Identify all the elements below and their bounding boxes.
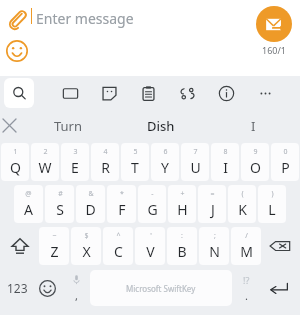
button[interactable]: Emoji keyboard (32, 267, 62, 309)
button[interactable]: @ (14, 185, 43, 223)
button[interactable]: Close suggestions (3, 119, 16, 132)
button[interactable]: $ (71, 227, 101, 265)
button[interactable]: Turn (22, 110, 114, 141)
staticText: U (190, 158, 201, 177)
button[interactable]: 5 (121, 143, 149, 181)
button[interactable]: : (167, 227, 197, 265)
button[interactable]: 2 (31, 143, 59, 181)
staticText: I (223, 158, 228, 177)
staticText: + (180, 189, 185, 199)
staticText: C (114, 242, 123, 261)
staticText: T (131, 158, 139, 177)
staticText: 4 (103, 147, 108, 157)
staticText: A (24, 200, 33, 219)
staticText: B (177, 242, 187, 261)
staticText: ' (150, 231, 152, 241)
staticText: = (210, 189, 215, 199)
staticText: N (209, 242, 220, 261)
staticText: 6 (163, 147, 168, 157)
staticText: D (85, 200, 96, 219)
staticText: ~ (52, 231, 57, 241)
staticText: 0 (283, 147, 288, 157)
staticText: G (147, 200, 158, 219)
button[interactable]: ( (228, 185, 256, 223)
button[interactable]: / (231, 227, 261, 265)
button[interactable]: # (45, 185, 74, 223)
button[interactable]: ^ (103, 227, 133, 265)
button[interactable]: Microsoft SwiftKey (90, 270, 232, 306)
staticText: Enter message (36, 9, 134, 28)
staticText: !? (243, 274, 250, 286)
button[interactable]: ) (258, 185, 286, 223)
staticText: ( (241, 189, 244, 199)
staticText: W (38, 158, 52, 177)
staticText: # (58, 189, 63, 199)
staticText: X (82, 242, 91, 261)
staticText: ) (271, 189, 274, 199)
staticText: K (238, 200, 247, 219)
button[interactable]: Backspace (261, 225, 299, 267)
staticText: Microsoft SwiftKey (126, 283, 196, 294)
staticText: 123 (7, 280, 28, 296)
button[interactable]: 0 (271, 143, 299, 181)
staticText: V (146, 242, 155, 261)
button[interactable]: ~ (39, 227, 69, 265)
staticText: / (245, 231, 248, 241)
staticText: * (120, 189, 124, 199)
button[interactable]: I (207, 110, 300, 141)
staticText: J (211, 200, 215, 219)
button[interactable]: Send message (256, 6, 292, 42)
button[interactable]: Clipboard (140, 85, 157, 102)
button[interactable]: + (168, 185, 196, 223)
button[interactable]: = (198, 185, 226, 223)
staticText: - (151, 189, 154, 199)
button[interactable]: 123 (2, 267, 32, 309)
button[interactable]: Dish (114, 110, 207, 141)
button[interactable]: 4 (91, 143, 119, 181)
staticText: ^ (116, 231, 121, 241)
staticText: H (177, 200, 188, 219)
button[interactable]: Shift (1, 225, 39, 267)
button[interactable]: !? (232, 267, 260, 309)
staticText: 2 (43, 147, 48, 157)
button[interactable]: 6 (151, 143, 179, 181)
button[interactable]: Emoji (6, 40, 28, 62)
button[interactable]: 7 (181, 143, 209, 181)
staticText: 8 (223, 147, 228, 157)
button[interactable]: GIF (62, 85, 79, 102)
button[interactable]: Translate (179, 85, 196, 102)
staticText: M (240, 242, 253, 261)
button[interactable]: More options (257, 85, 274, 102)
staticText: . (245, 288, 248, 303)
staticText: L (268, 200, 276, 219)
staticText: Z (50, 242, 59, 261)
staticText: S (56, 200, 64, 219)
staticText: & (88, 189, 94, 199)
staticText: 1 (13, 147, 18, 157)
button[interactable]: 3 (61, 143, 89, 181)
staticText: @ (25, 189, 32, 199)
button[interactable]: Stickers (101, 85, 118, 102)
button[interactable]: Search (4, 78, 34, 108)
button[interactable]: 1 (1, 143, 29, 181)
button[interactable]: 9 (241, 143, 269, 181)
button[interactable]: ' (135, 227, 165, 265)
staticText: F (118, 200, 126, 219)
staticText: 3 (73, 147, 78, 157)
staticText: P (281, 158, 290, 177)
button[interactable]: * (107, 185, 136, 223)
staticText: Dish (147, 117, 175, 135)
button[interactable]: - (138, 185, 166, 223)
staticText: ; (214, 231, 216, 241)
button[interactable]: 8 (211, 143, 239, 181)
staticText: I (251, 117, 256, 135)
button[interactable]: Info (218, 85, 235, 102)
staticText: 7 (193, 147, 198, 157)
button[interactable]: Enter (260, 267, 298, 309)
staticText: , (75, 288, 78, 303)
button[interactable]: & (76, 185, 105, 223)
button[interactable]: Attach file (6, 8, 28, 30)
button[interactable]: ; (199, 227, 229, 265)
staticText: Y (161, 158, 169, 177)
button[interactable]: Voice input (62, 267, 90, 309)
